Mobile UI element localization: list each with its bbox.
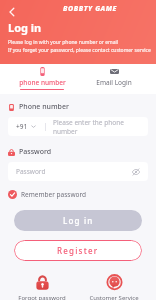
button[interactable]: phone number — [11, 64, 73, 90]
staticText: If you forget your password, please cont… — [8, 47, 151, 54]
staticText: Phone number — [19, 102, 69, 112]
staticText: BOBBTY GAME — [63, 4, 118, 14]
staticText: Password — [16, 167, 46, 176]
staticText: +91 — [16, 122, 28, 131]
staticText: Register — [57, 245, 99, 256]
button[interactable]: Back — [4, 4, 20, 20]
button[interactable]: Log in — [14, 210, 142, 231]
button[interactable]: Customer Service — [83, 274, 145, 300]
staticText: phone number — [19, 78, 66, 87]
button[interactable]: +91 — [8, 117, 148, 136]
button[interactable]: Email Login — [83, 64, 145, 89]
button[interactable]: Password — [8, 162, 148, 181]
button[interactable]: Remember password — [8, 190, 87, 199]
staticText: Log in — [8, 20, 42, 35]
button[interactable]: Show password — [129, 165, 143, 179]
staticText: Please enter the phone number — [53, 118, 148, 136]
staticText: Please log in with your phone number or … — [8, 39, 119, 46]
staticText: Remember password — [21, 190, 87, 199]
button[interactable]: Register — [14, 240, 142, 261]
staticText: Customer Service — [89, 294, 139, 300]
staticText: Forgot password — [18, 294, 66, 300]
staticText: Log in — [63, 215, 94, 226]
button[interactable]: Forgot password — [11, 274, 73, 300]
staticText: Password — [19, 147, 52, 157]
staticText: Email Login — [96, 78, 132, 87]
